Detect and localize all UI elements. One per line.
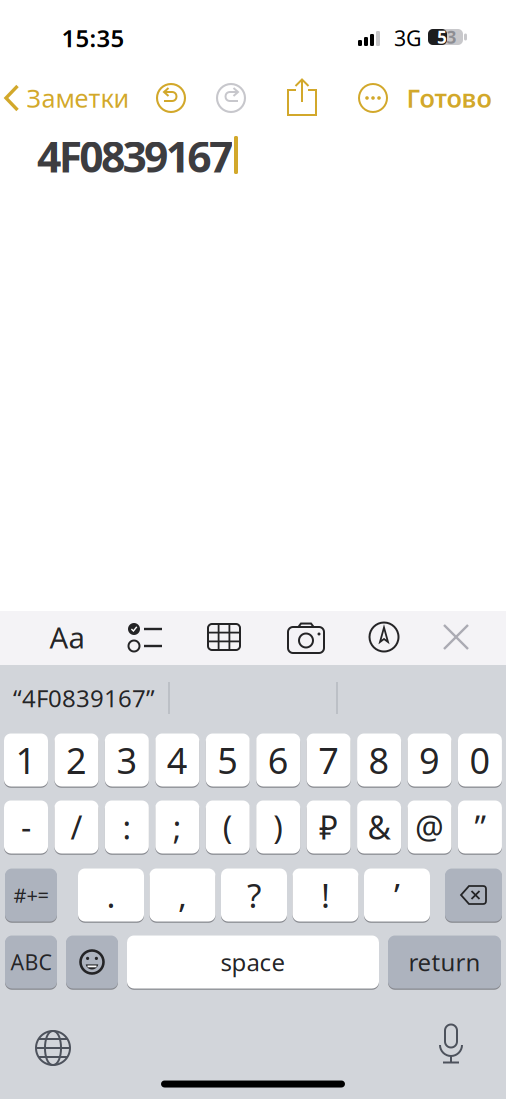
- button[interactable]: (: [206, 799, 250, 854]
- button[interactable]: @: [407, 799, 451, 854]
- button[interactable]: !: [292, 867, 358, 922]
- staticText: &: [368, 806, 391, 848]
- staticText: Заметки: [26, 81, 129, 115]
- button[interactable]: #+=: [5, 867, 57, 922]
- button[interactable]: More: [355, 80, 391, 116]
- staticText: ABC: [10, 948, 51, 976]
- button[interactable]: “4F0839167”: [4, 670, 164, 726]
- button[interactable]: &: [357, 799, 401, 854]
- staticText: 15:35: [61, 22, 124, 54]
- staticText: ”: [474, 806, 485, 848]
- staticText: ₽: [319, 806, 338, 848]
- button[interactable]: 0: [458, 732, 502, 787]
- button[interactable]: 9: [407, 732, 451, 787]
- button[interactable]: .: [78, 867, 144, 922]
- button[interactable]: ;: [155, 799, 199, 854]
- button[interactable]: 2: [54, 732, 98, 787]
- button[interactable]: ): [256, 799, 300, 854]
- staticText: 7: [318, 736, 339, 784]
- button[interactable]: 6: [256, 732, 300, 787]
- button[interactable]: space: [127, 934, 379, 989]
- button[interactable]: Redo: [213, 80, 249, 116]
- staticText: ’: [394, 873, 400, 917]
- button[interactable]: ABC: [5, 934, 57, 989]
- button[interactable]: return: [388, 934, 501, 989]
- staticText: /: [70, 806, 82, 848]
- staticText: 2: [66, 736, 87, 784]
- staticText: .: [106, 873, 115, 917]
- staticText: (: [223, 806, 233, 848]
- button[interactable]: Table: [206, 622, 242, 652]
- button[interactable]: Formatting: [45, 617, 89, 657]
- button[interactable]: ’: [364, 867, 430, 922]
- button[interactable]: 7: [307, 732, 351, 787]
- button[interactable]: ”: [458, 799, 502, 854]
- staticText: space: [220, 946, 285, 978]
- staticText: ?: [247, 873, 261, 917]
- button[interactable]: Delete: [445, 867, 502, 922]
- staticText: “4F0839167”: [13, 682, 155, 714]
- staticText: Aa: [49, 617, 84, 656]
- button[interactable]: 5: [206, 732, 250, 787]
- button[interactable]: 1: [4, 732, 48, 787]
- staticText: return: [408, 946, 480, 978]
- staticText: 4: [167, 736, 188, 784]
- staticText: ): [273, 806, 283, 848]
- button[interactable]: Undo: [153, 80, 189, 116]
- button[interactable]: 3: [105, 732, 149, 787]
- button[interactable]: Close: [441, 622, 471, 652]
- button[interactable]: Dictation: [437, 1024, 465, 1064]
- staticText: -: [21, 806, 31, 848]
- staticText: 3G: [394, 24, 422, 52]
- staticText: #+=: [13, 882, 48, 908]
- button[interactable]: :: [105, 799, 149, 854]
- staticText: 8: [369, 736, 390, 784]
- staticText: 6: [268, 736, 289, 784]
- button[interactable]: Checklist: [127, 620, 165, 654]
- button[interactable]: Share: [284, 77, 320, 119]
- staticText: :: [122, 806, 131, 848]
- staticText: 3: [116, 736, 137, 784]
- staticText: 3: [446, 25, 456, 48]
- staticText: 0: [469, 736, 490, 784]
- staticText: 9: [419, 736, 440, 784]
- button[interactable]: Next keyboard: [34, 1029, 72, 1067]
- button[interactable]: 4: [155, 732, 199, 787]
- button[interactable]: ,: [149, 867, 215, 922]
- staticText: 1: [15, 736, 36, 784]
- staticText: ,: [178, 873, 187, 917]
- button[interactable]: Emoji: [66, 934, 118, 989]
- staticText: Готово: [406, 81, 491, 115]
- button[interactable]: Заметки: [4, 78, 129, 118]
- button[interactable]: Готово: [406, 78, 491, 118]
- staticText: ;: [173, 806, 182, 848]
- button[interactable]: Camera: [286, 622, 326, 654]
- button[interactable]: Markup: [368, 621, 400, 653]
- button[interactable]: ?: [221, 867, 287, 922]
- button[interactable]: ₽: [307, 799, 351, 854]
- staticText: !: [321, 873, 330, 917]
- button[interactable]: /: [54, 799, 98, 854]
- staticText: 4F0839167: [37, 128, 233, 184]
- staticText: @: [415, 806, 444, 848]
- staticText: 5: [217, 736, 238, 784]
- button[interactable]: -: [4, 799, 48, 854]
- staticText: 5: [437, 25, 447, 48]
- button[interactable]: 8: [357, 732, 401, 787]
